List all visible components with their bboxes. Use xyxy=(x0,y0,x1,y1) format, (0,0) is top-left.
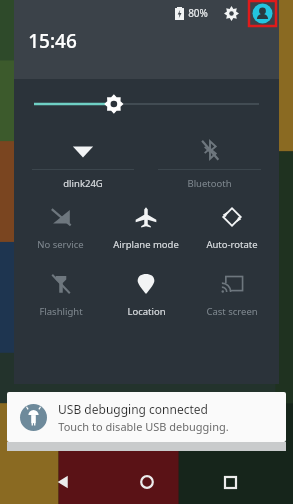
staticText: Airplane mode xyxy=(113,238,179,251)
staticText: Auto-rotate xyxy=(206,238,258,251)
staticText: Cast screen xyxy=(206,305,258,318)
staticText: No service xyxy=(37,238,84,251)
staticText: dlink24G xyxy=(63,177,103,190)
button[interactable]: Recent apps xyxy=(209,461,251,503)
button[interactable]: USB debugging connected xyxy=(7,392,286,442)
button[interactable]: Flashlight xyxy=(18,267,103,320)
staticText: 15:46 xyxy=(28,28,77,54)
button[interactable]: dlink24G xyxy=(20,135,146,190)
staticText: Flashlight xyxy=(39,305,83,318)
button[interactable]: Home xyxy=(126,461,168,503)
button[interactable]: User profile xyxy=(250,1,275,26)
staticText: Touch to disable USB debugging. xyxy=(58,419,229,434)
button[interactable]: Brightness xyxy=(14,79,279,129)
staticText: Bluetooth xyxy=(187,177,232,190)
button[interactable]: Auto-rotate xyxy=(189,200,275,253)
staticText: Location xyxy=(127,305,166,318)
staticText: 80% xyxy=(188,6,208,20)
button[interactable]: Airplane mode xyxy=(103,200,189,253)
button[interactable]: Location xyxy=(103,267,189,320)
staticText: USB debugging connected xyxy=(58,401,208,417)
button[interactable]: Back xyxy=(42,461,84,503)
button[interactable]: Bluetooth xyxy=(146,135,273,190)
button[interactable]: Settings xyxy=(221,3,241,23)
button[interactable]: Cast screen xyxy=(189,267,275,320)
button[interactable]: No service xyxy=(18,200,103,253)
